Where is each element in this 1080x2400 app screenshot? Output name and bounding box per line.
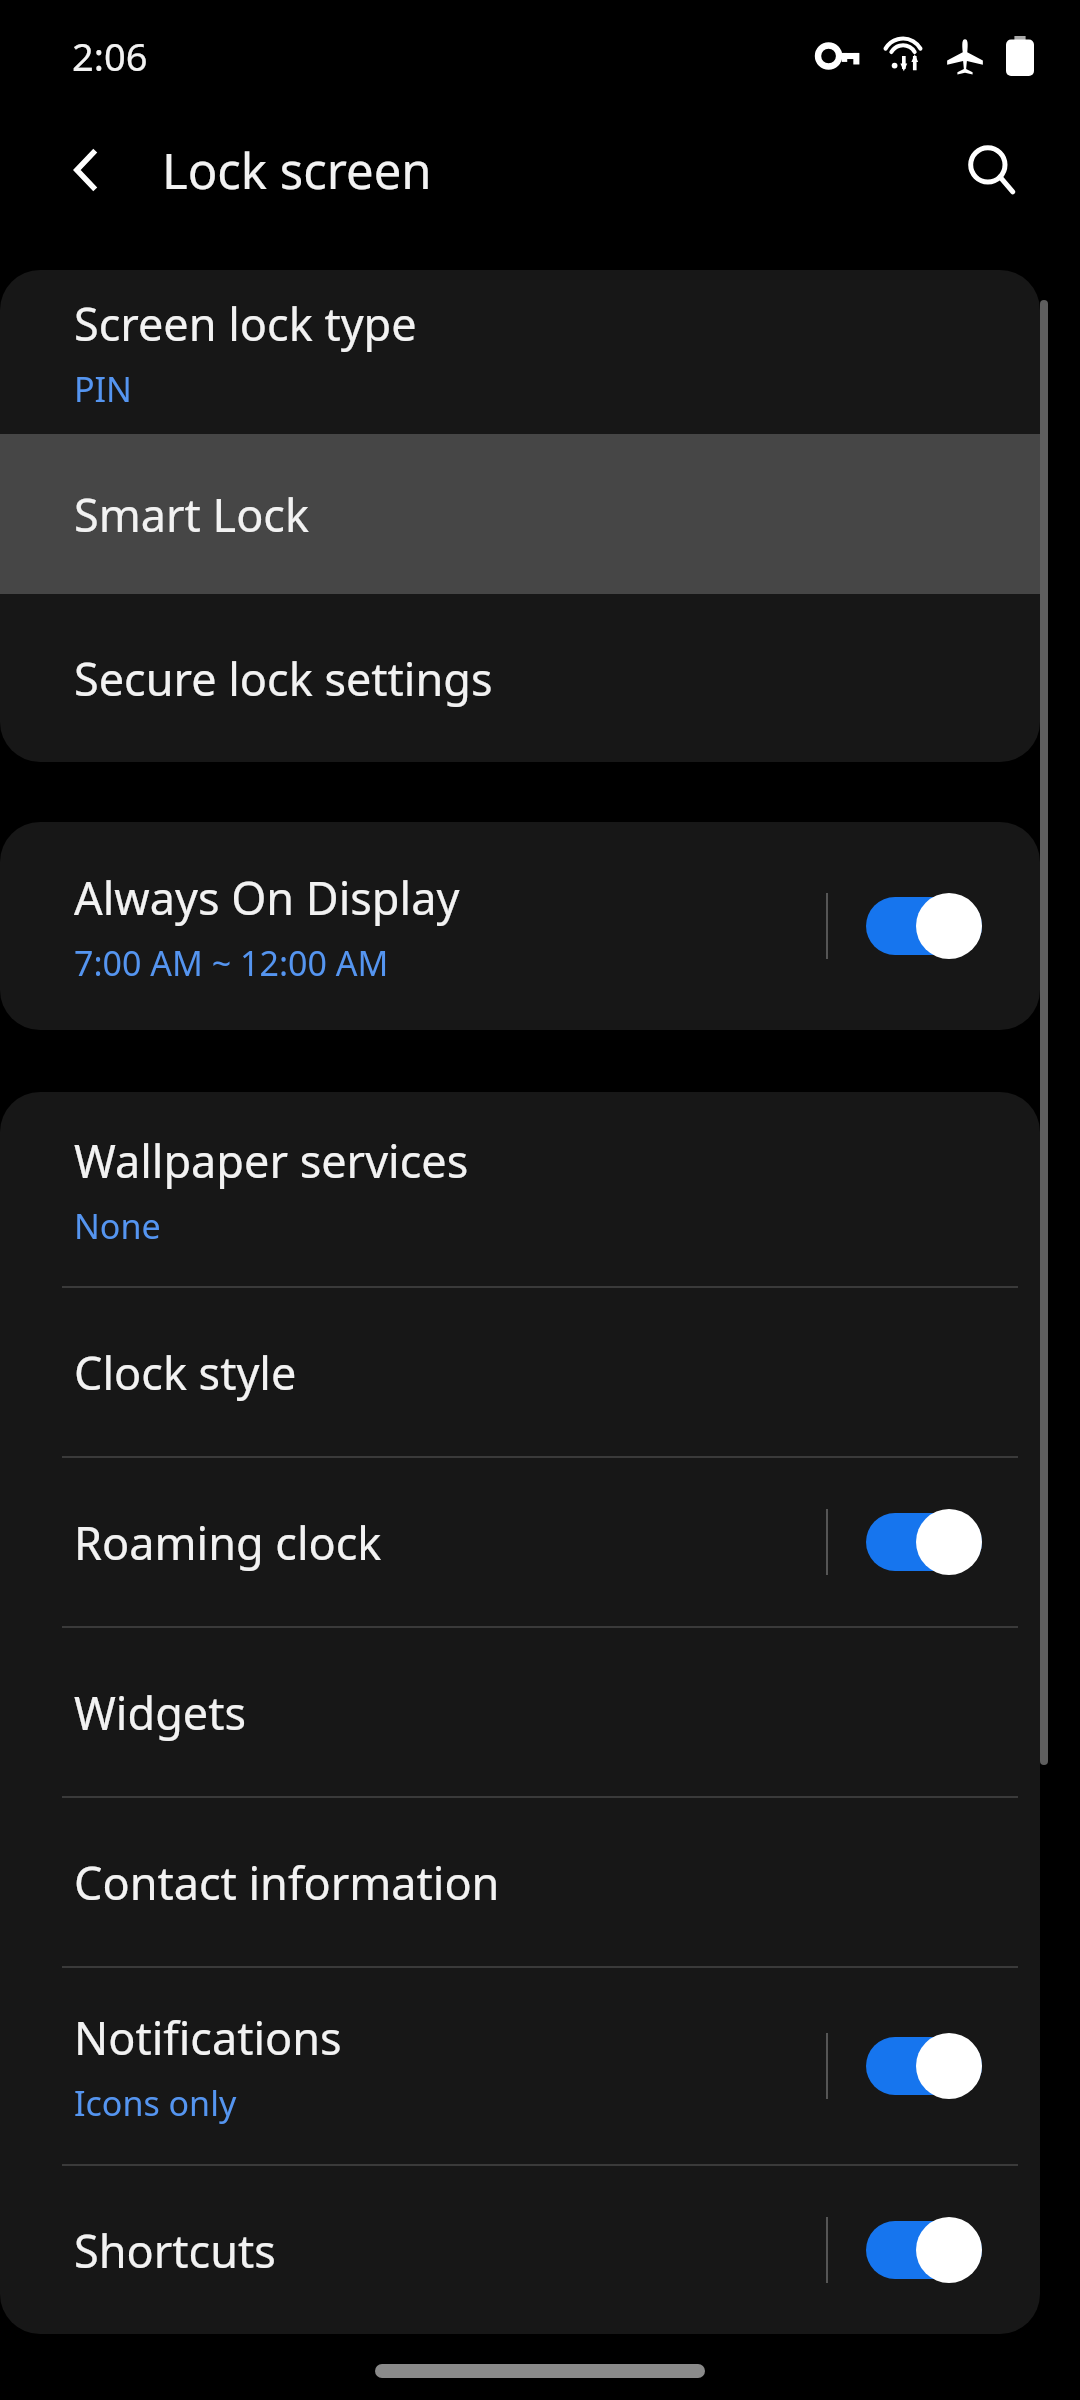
button[interactable]: Shortcuts [0, 2166, 1040, 2334]
button[interactable]: Search [946, 124, 1038, 216]
button[interactable]: Notifications [0, 1968, 1040, 2164]
staticText: Roaming clock [74, 1512, 382, 1573]
button[interactable]: Notifications toggle [866, 2033, 982, 2099]
staticText: Smart Lock [74, 484, 309, 545]
staticText: Shortcuts [74, 2220, 276, 2281]
button[interactable]: Shortcuts toggle [866, 2217, 982, 2283]
button[interactable]: Contact information [0, 1798, 1040, 1966]
button[interactable]: Roaming clock toggle [866, 1509, 982, 1575]
staticText: Wallpaper services [74, 1130, 469, 1191]
button[interactable]: Screen lock type [0, 270, 1040, 434]
staticText: Widgets [74, 1682, 246, 1743]
staticText: Screen lock type [74, 293, 417, 354]
staticText: None [74, 1203, 161, 1249]
button[interactable]: Always On Display toggle [866, 893, 982, 959]
staticText: Icons only [74, 2080, 237, 2126]
staticText: Clock style [74, 1342, 297, 1403]
button[interactable]: Wallpaper services [0, 1092, 1040, 1286]
staticText: Contact information [74, 1852, 500, 1913]
staticText: Always On Display [74, 867, 460, 928]
button[interactable]: Secure lock settings [0, 594, 1040, 762]
staticText: 7:00 AM ~ 12:00 AM [74, 940, 389, 986]
button[interactable]: Clock style [0, 1288, 1040, 1456]
button[interactable]: Widgets [0, 1628, 1040, 1796]
staticText: 2:06 [72, 30, 148, 82]
staticText: Notifications [74, 2007, 342, 2068]
staticText: Secure lock settings [74, 648, 493, 709]
button[interactable]: Smart Lock [0, 434, 1040, 594]
staticText: Lock screen [162, 137, 432, 204]
button[interactable]: Always On Display [0, 822, 1040, 1030]
button[interactable]: Roaming clock [0, 1458, 1040, 1626]
staticText: PIN [74, 366, 132, 412]
button[interactable]: Back [42, 126, 130, 214]
